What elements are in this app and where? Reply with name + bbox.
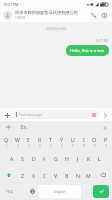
staticText: 中 [6, 124, 11, 130]
staticText: En, [21, 124, 28, 130]
staticText: Q [4, 136, 9, 143]
staticText: C [43, 172, 47, 179]
button[interactable]: Z [17, 167, 28, 183]
staticText: 106592 [15, 16, 26, 20]
staticText: 5 [50, 144, 52, 148]
staticText: S [21, 155, 24, 162]
button[interactable]: O [89, 133, 100, 150]
staticText: V [54, 172, 58, 179]
button[interactable]: K [83, 150, 94, 167]
staticText: 10:21 PM [96, 39, 109, 43]
button[interactable]: Add attachment [3, 111, 11, 119]
staticText: 3 [28, 144, 30, 148]
button[interactable]: Call [89, 11, 98, 20]
button[interactable]: N [72, 167, 83, 183]
staticText: Z [21, 172, 24, 179]
button[interactable]: A [6, 150, 17, 167]
staticText: F [43, 155, 46, 162]
button[interactable]: Backspace [94, 167, 111, 183]
button[interactable]: Text message [13, 110, 99, 119]
button[interactable]: B [61, 167, 72, 183]
button[interactable]: G [50, 150, 61, 167]
button[interactable]: 中 [4, 123, 13, 131]
staticText: M [86, 172, 91, 179]
button[interactable]: Y [56, 133, 67, 150]
button[interactable]: Shift [1, 167, 17, 183]
button[interactable]: M [83, 167, 94, 183]
button[interactable]: D [28, 150, 39, 167]
staticText: T [49, 136, 52, 143]
button[interactable]: U [67, 133, 78, 150]
button[interactable]: Keyboard settings [101, 124, 108, 131]
staticText: U [71, 136, 75, 143]
staticText: E [27, 136, 30, 143]
staticText: I [83, 136, 85, 143]
button[interactable]: English [38, 185, 81, 198]
staticText: D [32, 155, 36, 162]
button[interactable]: En, [19, 123, 30, 131]
staticText: A [10, 155, 14, 162]
staticText: H [65, 155, 69, 162]
staticText: O [92, 136, 97, 143]
button[interactable]: H [61, 150, 72, 167]
button[interactable]: Enter [93, 185, 109, 198]
button[interactable]: Change language [27, 185, 37, 198]
button[interactable]: L [94, 150, 105, 167]
staticText: B [65, 172, 69, 179]
button[interactable]: , [17, 185, 27, 198]
staticText: 0 [105, 144, 107, 148]
button[interactable]: More options [100, 11, 109, 20]
button[interactable]: J [72, 150, 83, 167]
staticText: 6 [61, 144, 63, 148]
staticText: 2 [17, 144, 19, 148]
button[interactable]: F [39, 150, 50, 167]
staticText: 10:21 PM [3, 2, 19, 7]
staticText: . [86, 189, 88, 194]
staticText: English [54, 189, 66, 194]
staticText: K [87, 155, 91, 162]
staticText: Y [60, 136, 63, 143]
button[interactable]: V [50, 167, 61, 183]
button[interactable]: P [100, 133, 111, 150]
button[interactable]: I [78, 133, 89, 150]
staticText: P [104, 136, 108, 143]
button[interactable]: T [45, 133, 56, 150]
staticText: 9 [94, 144, 96, 148]
staticText: G [54, 155, 58, 162]
button[interactable]: ?1☺ [2, 185, 17, 198]
button[interactable]: W [12, 133, 23, 150]
staticText: 1 [6, 144, 8, 148]
staticText: 8 [83, 144, 85, 148]
staticText: R [38, 136, 42, 143]
staticText: J [77, 155, 79, 162]
staticText: Text message [19, 112, 92, 117]
button[interactable]: Q [1, 133, 12, 150]
button[interactable]: C [39, 167, 50, 183]
staticText: W [15, 136, 20, 143]
staticText: L [98, 155, 101, 162]
button[interactable]: Stickers [92, 113, 96, 117]
button[interactable]: S [17, 150, 28, 167]
staticText: X [32, 172, 36, 179]
button[interactable]: R [34, 133, 45, 150]
button[interactable]: Hello, this is a test [66, 45, 109, 56]
button[interactable]: X [28, 167, 39, 183]
staticText: 7 [72, 144, 74, 148]
staticText: 4 [39, 144, 41, 148]
staticText: N [76, 172, 80, 179]
staticText: 深圳市腾邦国际货运代理有限公司 [15, 10, 78, 15]
staticText: Hello, this is a test [70, 48, 105, 53]
staticText: 2019年4月9日 [46, 27, 67, 31]
button[interactable]: E [23, 133, 34, 150]
staticText: ?1☺ [6, 189, 14, 194]
staticText: , [21, 189, 23, 194]
button[interactable]: Contact avatar [3, 11, 12, 20]
button[interactable]: Send [101, 111, 109, 119]
